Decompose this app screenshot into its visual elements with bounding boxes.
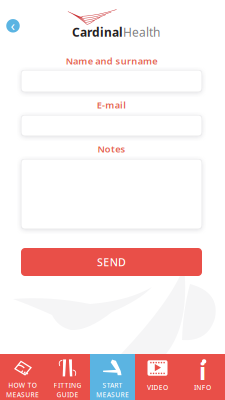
staticText: START [102,381,123,390]
staticText: Health [123,24,160,40]
staticText: MEASURE [6,390,39,399]
button[interactable]: FITTING [45,354,90,400]
staticText: ‹ [10,16,15,35]
staticText: HOW TO [8,381,37,390]
button[interactable]: Back [0,13,26,39]
button[interactable]: VIDEO [135,354,180,400]
staticText: SEND [97,255,126,269]
staticText: E-mail [97,99,126,111]
staticText: Notes [97,143,126,155]
staticText: VIDEO [147,383,168,392]
staticText: GUIDE [56,390,79,399]
button[interactable]: SEND [21,248,202,276]
staticText: FITTING [54,381,81,390]
button[interactable]: i [180,354,225,400]
staticText: i [199,355,206,387]
button[interactable]: START [90,354,135,400]
button[interactable]: HOW TO [0,354,45,400]
staticText: Name and surname [66,55,157,67]
staticText: MEASURE [96,390,129,399]
staticText: INFO [194,383,211,392]
staticText: Cardinal [72,24,123,40]
